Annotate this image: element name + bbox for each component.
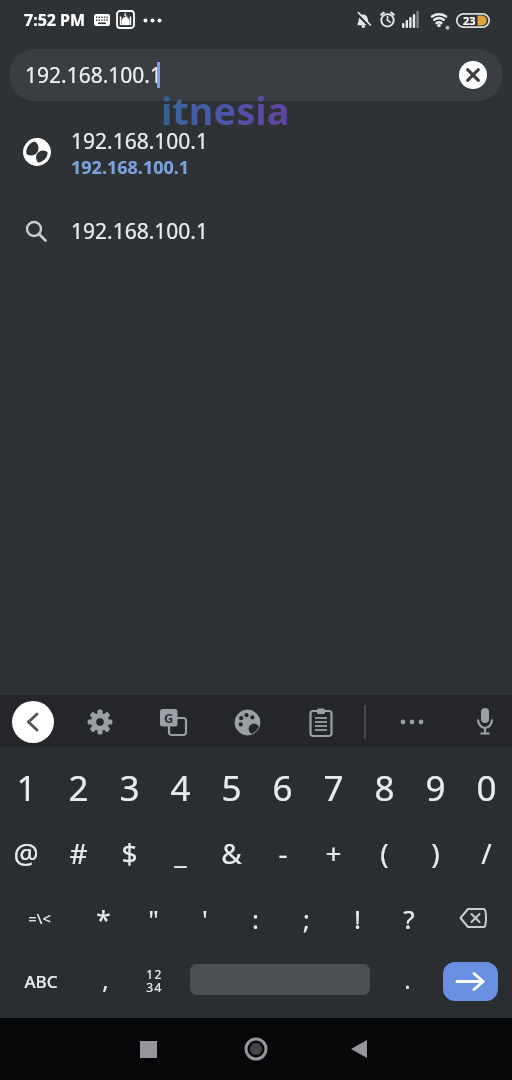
- staticText: 6: [272, 764, 293, 812]
- button[interactable]: [308, 708, 334, 737]
- button[interactable]: 9: [410, 757, 461, 819]
- button[interactable]: @: [0, 822, 52, 884]
- staticText: 2: [68, 764, 89, 812]
- staticText: 0: [476, 764, 497, 812]
- button[interactable]: /: [461, 822, 512, 884]
- button[interactable]: 0: [461, 757, 512, 819]
- staticText: 1: [16, 764, 37, 812]
- staticText: 192.168.100.1: [25, 61, 163, 90]
- button[interactable]: [459, 61, 487, 89]
- button[interactable]: [398, 712, 428, 732]
- staticText: 192.168.100.1: [71, 155, 190, 177]
- button[interactable]: [348, 1039, 370, 1059]
- button[interactable]: ;: [281, 887, 332, 949]
- button[interactable]: [472, 706, 498, 738]
- staticText: 8: [374, 764, 395, 812]
- button[interactable]: 5: [206, 757, 257, 819]
- staticText: &: [221, 834, 242, 872]
- staticText: +: [325, 834, 342, 872]
- button[interactable]: .: [382, 958, 432, 1000]
- button[interactable]: G: [160, 709, 187, 736]
- staticText: ?: [403, 901, 415, 936]
- button[interactable]: !: [332, 887, 383, 949]
- staticText: *: [96, 901, 111, 936]
- button[interactable]: 7: [308, 757, 359, 819]
- button[interactable]: :: [230, 887, 281, 949]
- button[interactable]: [443, 962, 498, 1001]
- button[interactable]: (: [359, 822, 410, 884]
- staticText: 3: [119, 764, 140, 812]
- button[interactable]: ,: [80, 958, 130, 1000]
- button[interactable]: ": [128, 887, 179, 949]
- staticText: 23: [463, 13, 476, 28]
- staticText: :: [252, 901, 259, 936]
- staticText: ': [202, 901, 208, 936]
- button[interactable]: =\<: [0, 887, 78, 949]
- staticText: itnesia: [161, 84, 290, 130]
- button[interactable]: ): [410, 822, 461, 884]
- staticText: =\<: [28, 908, 51, 928]
- button[interactable]: 4: [155, 757, 206, 819]
- staticText: .: [404, 963, 411, 996]
- button[interactable]: 192.168.100.1: [9, 49, 503, 101]
- button[interactable]: 8: [359, 757, 410, 819]
- button[interactable]: [86, 708, 114, 736]
- staticText: 5: [221, 764, 242, 812]
- button[interactable]: 192.168.100.1: [0, 208, 512, 254]
- staticText: 4: [170, 764, 191, 812]
- button[interactable]: -: [257, 822, 308, 884]
- button[interactable]: ?: [383, 887, 434, 949]
- button[interactable]: &: [206, 822, 257, 884]
- button[interactable]: [234, 709, 261, 736]
- staticText: (: [380, 834, 389, 872]
- button[interactable]: 2: [52, 757, 104, 819]
- staticText: -: [278, 834, 288, 872]
- staticText: ABC: [24, 970, 58, 993]
- button[interactable]: $: [104, 822, 155, 884]
- staticText: ,: [102, 963, 109, 996]
- button[interactable]: ABC: [8, 962, 74, 1000]
- button[interactable]: 3: [104, 757, 155, 819]
- staticText: ): [431, 834, 440, 872]
- button[interactable]: ': [179, 887, 230, 949]
- staticText: /: [481, 834, 492, 872]
- staticText: ;: [303, 901, 310, 936]
- staticText: 192.168.100.1: [71, 217, 209, 246]
- button[interactable]: #: [52, 822, 104, 884]
- staticText: 7:52 PM: [24, 9, 86, 31]
- button[interactable]: _: [155, 822, 206, 884]
- staticText: #: [69, 834, 88, 872]
- staticText: G: [164, 709, 174, 727]
- staticText: $: [121, 834, 138, 872]
- button[interactable]: [12, 701, 54, 743]
- button[interactable]: [434, 887, 512, 949]
- button[interactable]: *: [78, 887, 128, 949]
- staticText: 9: [425, 764, 446, 812]
- button[interactable]: 1: [0, 757, 52, 819]
- staticText: _: [174, 834, 187, 872]
- staticText: 192.168.100.1: [71, 127, 209, 153]
- button[interactable]: [244, 1037, 268, 1061]
- button[interactable]: 192.168.100.1: [0, 124, 512, 182]
- staticText: ": [148, 901, 159, 936]
- staticText: 12 34: [146, 966, 163, 996]
- staticText: !: [354, 901, 361, 936]
- button[interactable]: 12 34: [130, 958, 178, 1004]
- staticText: @: [13, 834, 39, 872]
- button[interactable]: 6: [257, 757, 308, 819]
- staticText: 7: [323, 764, 344, 812]
- button[interactable]: +: [308, 822, 359, 884]
